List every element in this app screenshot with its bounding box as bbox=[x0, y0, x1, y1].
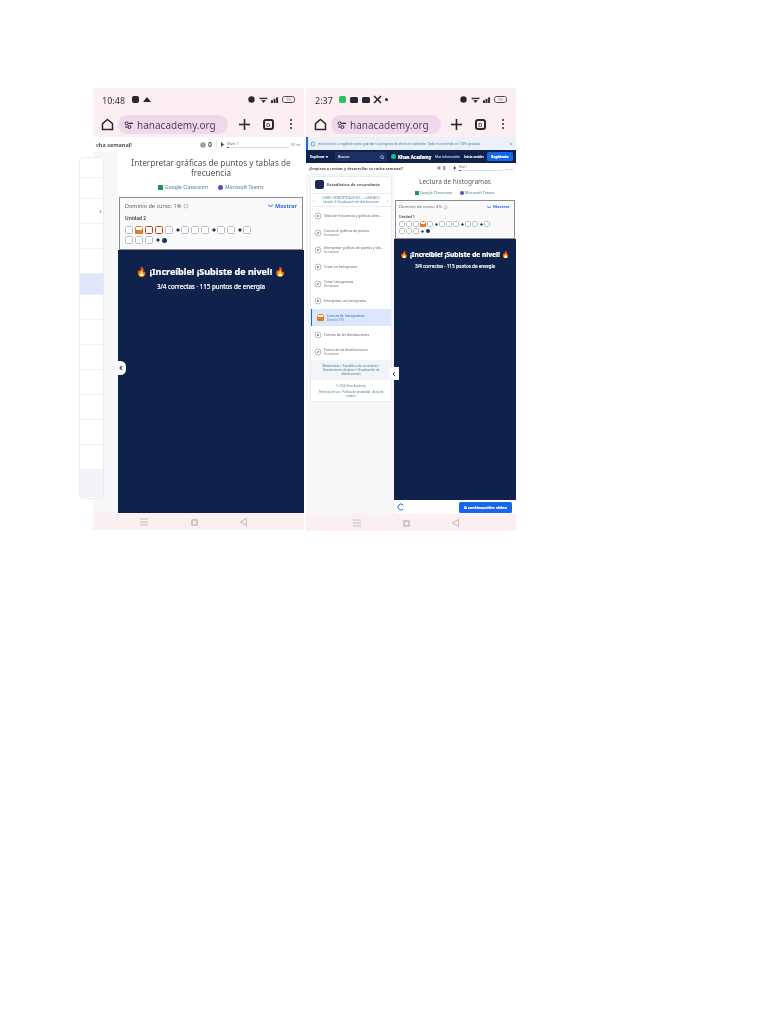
staticText: Buscar bbox=[338, 154, 350, 159]
button[interactable]: New tab bbox=[447, 115, 465, 133]
staticText: Microsoft Teams bbox=[225, 184, 264, 191]
button[interactable]: Tabs bbox=[259, 115, 277, 133]
staticText: 🔥 ¡Increíble! ¡Subiste de nivel! 🔥 bbox=[136, 265, 286, 277]
staticText: Forma de las distribuciones bbox=[324, 347, 368, 352]
button[interactable]: Mostrar bbox=[267, 201, 298, 210]
button[interactable]: Home bbox=[98, 115, 116, 133]
staticText: Inicia sesión bbox=[464, 154, 484, 159]
staticText: 0 bbox=[208, 140, 213, 150]
staticText: hanacademy.org bbox=[137, 118, 216, 132]
button[interactable]: Back bbox=[236, 515, 250, 529]
button[interactable]: Interpretar gráficas de puntos y tab... bbox=[310, 241, 392, 258]
staticText: Lectura de histogramas bbox=[327, 313, 365, 318]
staticText: D bbox=[478, 121, 483, 129]
button[interactable]: Collapse sidebar bbox=[115, 361, 126, 375]
staticText: Nivel 1 bbox=[459, 165, 468, 169]
button[interactable]: Formas de las distribuciones bbox=[310, 326, 392, 343]
button[interactable]: Home bbox=[187, 515, 201, 529]
staticText: 3/4 correctas · 115 puntos de energía bbox=[157, 282, 265, 290]
staticText: Tabla de frecuencia y gráficas direc... bbox=[324, 213, 383, 218]
staticText: Crear un histograma bbox=[324, 264, 357, 269]
button[interactable]: Crear histogramas bbox=[310, 275, 392, 292]
staticText: Sin empezar bbox=[324, 284, 340, 288]
staticText: 2:37 bbox=[315, 94, 333, 106]
staticText: 3/4 correctas · 115 puntos de energía bbox=[415, 263, 496, 269]
staticText: Dominio: 70% bbox=[327, 318, 344, 322]
staticText: 19 bbox=[498, 97, 503, 102]
staticText: 0/1 set bbox=[291, 143, 301, 147]
staticText: hanacademy.org bbox=[350, 118, 429, 132]
button[interactable]: Google Classroom bbox=[157, 183, 209, 192]
staticText: Lectura de histogramas bbox=[394, 177, 516, 186]
staticText: Interpretar gráficas de puntos y tab... bbox=[324, 245, 384, 250]
staticText: Formas de las distribuciones bbox=[324, 332, 370, 337]
staticText: › bbox=[387, 198, 389, 203]
staticText: × bbox=[510, 141, 513, 147]
button[interactable]: Crear un histograma bbox=[310, 258, 392, 275]
button[interactable]: Regístrate bbox=[487, 152, 513, 161]
button[interactable]: More options bbox=[495, 116, 511, 132]
staticText: 0 bbox=[443, 165, 446, 171]
button[interactable]: A continuación: vídeo bbox=[459, 502, 512, 513]
button[interactable]: Back bbox=[448, 516, 462, 530]
button[interactable]: Tabla de frecuencia y gráficas direc... bbox=[310, 207, 392, 224]
button[interactable]: Recents bbox=[137, 515, 151, 529]
staticText: Nivel 1 bbox=[227, 141, 239, 146]
staticText: 10:48 bbox=[102, 94, 126, 106]
button[interactable]: Construir gráficas de puntos bbox=[310, 224, 392, 241]
button[interactable]: Collapse sidebar bbox=[389, 367, 399, 380]
staticText: cha semanal! bbox=[96, 141, 132, 148]
button[interactable]: hanacademy.org bbox=[118, 115, 228, 134]
button[interactable]: Microsoft Teams bbox=[217, 183, 265, 192]
staticText: Interpretar un histograma bbox=[324, 298, 366, 303]
staticText: CURSO: ESTADÍSTICA DE SEC... > UNIDAD 2 … bbox=[315, 196, 387, 204]
button[interactable]: hanacademy.org bbox=[331, 115, 441, 134]
staticText: Dominio de curso: 1% bbox=[125, 202, 182, 209]
staticText: Unidad 1 bbox=[399, 214, 415, 219]
button[interactable]: Google Classroom bbox=[414, 189, 454, 196]
staticText: Sin empezar bbox=[324, 233, 340, 237]
staticText: Crear histogramas bbox=[324, 279, 354, 284]
button[interactable]: Buscar bbox=[335, 152, 387, 161]
button[interactable]: New tab bbox=[235, 115, 253, 133]
button[interactable]: Microsoft Teams bbox=[459, 189, 496, 196]
staticText: Google Classroom bbox=[420, 190, 453, 195]
button[interactable]: Mostrar bbox=[486, 203, 511, 211]
staticText: Mostrar bbox=[493, 204, 510, 210]
staticText: Khan Academy bbox=[398, 154, 432, 160]
button[interactable]: Interpretar un histograma bbox=[310, 292, 392, 309]
button[interactable]: Recents bbox=[350, 516, 364, 530]
button[interactable]: More options bbox=[283, 116, 299, 132]
staticText: Regístrate bbox=[491, 154, 509, 159]
staticText: 19 bbox=[286, 97, 291, 102]
staticText: D bbox=[266, 121, 271, 129]
staticText: Sin empezar bbox=[324, 250, 340, 254]
staticText: inicia sesión o regístrate para guardar … bbox=[318, 142, 481, 146]
button[interactable]: Home bbox=[399, 516, 413, 530]
staticText: Construir gráficas de puntos bbox=[324, 228, 370, 233]
staticText: A continuación: vídeo bbox=[464, 505, 507, 510]
staticText: 🔥 ¡Increíble! ¡Subiste de nivel! 🔥 bbox=[400, 250, 510, 259]
button[interactable]: Forma de las distribuciones bbox=[310, 343, 392, 360]
staticText: Sin empezar bbox=[324, 352, 340, 356]
staticText: Mostrar bbox=[275, 202, 297, 209]
staticText: Matemáticas > Estadística de secundaria … bbox=[315, 364, 387, 376]
button[interactable]: Home bbox=[311, 115, 329, 133]
staticText: Interpretar gráficas de puntos y tablas … bbox=[126, 157, 296, 179]
button[interactable]: Tabs bbox=[471, 115, 489, 133]
staticText: Explorar ▾ bbox=[310, 154, 328, 159]
staticText: Dominio de curso: 4% bbox=[399, 204, 442, 210]
staticText: Términos de uso · Política de privacidad… bbox=[318, 390, 384, 398]
staticText: Mas información bbox=[435, 155, 461, 159]
staticText: Google Classroom bbox=[165, 184, 208, 191]
button[interactable]: Explorar ▾ bbox=[309, 152, 329, 161]
staticText: ¡Empieza a revisar y desarrollar tu rach… bbox=[309, 166, 403, 171]
staticText: Unidad 2 bbox=[125, 215, 147, 222]
staticText: ‹ bbox=[313, 198, 315, 203]
staticText: Estadística de secundaria bbox=[327, 182, 380, 188]
staticText: © 2024 Khan Academy bbox=[336, 384, 366, 388]
button[interactable]: Lectura de histogramas bbox=[310, 309, 392, 326]
staticText: 0/1 set bbox=[505, 167, 513, 170]
staticText: Microsoft Teams bbox=[465, 190, 495, 195]
